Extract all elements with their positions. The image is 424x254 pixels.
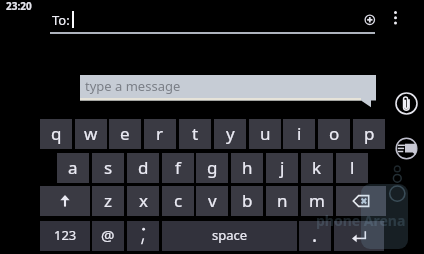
staticText: d <box>138 156 149 179</box>
button[interactable]: Attach <box>395 92 418 115</box>
staticText: . <box>312 222 318 248</box>
button[interactable]: m <box>301 186 333 216</box>
button[interactable]: @ <box>92 221 124 251</box>
staticText: t <box>192 122 199 145</box>
button[interactable]: Add recipient <box>360 10 380 30</box>
staticText: g <box>207 156 218 179</box>
button[interactable]: l <box>336 153 368 183</box>
button[interactable]: Messages <box>395 137 418 160</box>
button[interactable]: j <box>266 153 298 183</box>
staticText: y <box>226 122 235 145</box>
staticText: p <box>364 122 375 145</box>
button[interactable]: space <box>162 221 297 251</box>
button[interactable]: v <box>196 186 228 216</box>
button[interactable]: p <box>353 119 385 149</box>
staticText: x <box>139 189 148 212</box>
staticText: o <box>329 122 340 145</box>
button[interactable]: x <box>127 186 159 216</box>
staticText: k <box>312 156 322 179</box>
button[interactable]: e <box>109 119 141 149</box>
button[interactable]: f <box>162 153 194 183</box>
staticText: f <box>175 156 181 179</box>
button[interactable]: b <box>231 186 263 216</box>
staticText: q <box>51 122 62 145</box>
button[interactable]: y <box>214 119 246 149</box>
button[interactable]: 123 <box>40 221 90 251</box>
staticText: c <box>174 189 183 212</box>
button[interactable]: Backspace <box>336 186 386 216</box>
button[interactable]: Enter <box>334 221 384 251</box>
staticText: 23:20 <box>6 0 32 13</box>
button[interactable]: Shift <box>40 186 90 216</box>
staticText: type a message <box>85 77 181 95</box>
button[interactable] <box>127 221 159 251</box>
staticText: b <box>242 189 253 212</box>
staticText: h <box>242 156 253 179</box>
staticText: @ <box>101 225 115 245</box>
staticText: To: <box>52 11 70 29</box>
button[interactable]: s <box>92 153 124 183</box>
staticText: j <box>280 156 285 179</box>
staticText: w <box>84 122 98 145</box>
button[interactable]: q <box>40 119 72 149</box>
button[interactable]: r <box>144 119 176 149</box>
staticText: phone Arena <box>316 211 406 230</box>
button[interactable]: n <box>266 186 298 216</box>
button[interactable]: z <box>92 186 124 216</box>
button[interactable]: g <box>196 153 228 183</box>
staticText: u <box>260 122 271 145</box>
staticText: z <box>104 189 112 212</box>
button[interactable]: a <box>57 153 89 183</box>
button[interactable]: d <box>127 153 159 183</box>
staticText: s <box>104 156 113 179</box>
staticText: e <box>120 122 130 145</box>
button[interactable]: More options <box>390 7 401 29</box>
staticText: a <box>68 156 78 179</box>
button[interactable]: o <box>318 119 350 149</box>
button[interactable]: c <box>162 186 194 216</box>
staticText: space <box>212 226 248 244</box>
button[interactable]: type a message <box>80 75 376 108</box>
staticText: m <box>309 189 325 212</box>
button[interactable]: u <box>249 119 281 149</box>
staticText: i <box>297 122 302 145</box>
button[interactable]: h <box>231 153 263 183</box>
staticText: l <box>350 156 355 179</box>
button[interactable]: . <box>299 221 331 251</box>
staticText: 123 <box>54 226 77 244</box>
button[interactable]: w <box>75 119 107 149</box>
button[interactable]: t <box>179 119 211 149</box>
staticText: v <box>208 189 217 212</box>
staticText: n <box>277 189 288 212</box>
button[interactable]: i <box>283 119 315 149</box>
staticText: r <box>156 122 164 145</box>
button[interactable]: k <box>301 153 333 183</box>
